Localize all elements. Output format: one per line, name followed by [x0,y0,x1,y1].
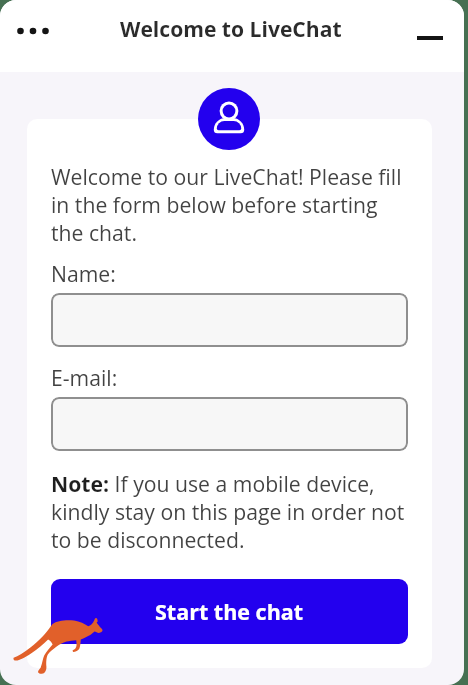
button[interactable]: More options [9,7,57,55]
staticText: Start the chat [155,597,304,626]
staticText: E-mail: [51,363,118,392]
staticText: Welcome to our LiveChat! Please fill in … [51,162,404,247]
button[interactable]: Agent avatar [198,88,260,150]
staticText: Name: [51,259,116,288]
button[interactable]: Minimize [406,14,454,62]
button[interactable]: E-mail input [51,397,408,451]
staticText: Welcome to LiveChat [120,14,342,43]
button[interactable]: Name input [51,293,408,347]
button[interactable]: Start the chat [51,579,408,644]
staticText: Note: If you use a mobile device, kindly… [51,469,408,554]
